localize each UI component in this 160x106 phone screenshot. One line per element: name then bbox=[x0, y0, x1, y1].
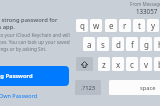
button[interactable]: q bbox=[76, 19, 88, 32]
staticText: w bbox=[93, 20, 100, 31]
button[interactable]: t bbox=[133, 19, 145, 32]
staticText: d bbox=[116, 39, 121, 50]
button[interactable]: f bbox=[126, 37, 138, 51]
staticText: r bbox=[123, 20, 127, 31]
staticText: z bbox=[102, 59, 106, 70]
button[interactable]: e bbox=[105, 19, 117, 32]
staticText: t bbox=[138, 20, 141, 31]
button[interactable]: r bbox=[119, 19, 131, 32]
staticText: g bbox=[144, 39, 149, 50]
staticText: c bbox=[130, 59, 134, 70]
staticText: Choose My Own Password bbox=[0, 92, 38, 99]
staticText: q bbox=[80, 20, 85, 31]
staticText: s bbox=[101, 39, 105, 50]
button[interactable]: a bbox=[83, 37, 95, 51]
button[interactable]: Shift bbox=[76, 57, 93, 71]
button[interactable]: d bbox=[112, 37, 124, 51]
button[interactable]: s bbox=[97, 37, 109, 51]
staticText: This password will be saved to your iClo… bbox=[0, 32, 70, 38]
button[interactable]: w bbox=[90, 19, 102, 32]
staticText: Safari can create a strong password for bbox=[0, 16, 58, 24]
button[interactable]: x bbox=[112, 57, 124, 71]
staticText: v bbox=[144, 59, 149, 70]
staticText: sync to all of your other devices. You c… bbox=[0, 39, 70, 45]
button[interactable]: Choose My Own Password bbox=[0, 91, 69, 100]
staticText: this app. bbox=[0, 23, 15, 31]
staticText: e bbox=[109, 20, 114, 31]
staticText: y bbox=[151, 20, 156, 31]
staticText: From Messages bbox=[130, 1, 160, 7]
staticText: passwords in Settings or by asking Siri. bbox=[0, 46, 47, 52]
staticText: h bbox=[158, 39, 160, 50]
button[interactable]: c bbox=[126, 57, 138, 71]
button[interactable]: y bbox=[147, 19, 159, 32]
staticText: 133057 bbox=[136, 7, 158, 15]
staticText: space bbox=[140, 84, 156, 92]
button[interactable]: h bbox=[154, 37, 160, 51]
button[interactable]: b bbox=[154, 57, 160, 71]
button[interactable] bbox=[100, 0, 160, 16]
staticText: .?123 bbox=[81, 84, 96, 92]
button[interactable]: space bbox=[109, 80, 160, 95]
staticText: b bbox=[158, 59, 160, 70]
staticText: x bbox=[116, 59, 121, 70]
staticText: a bbox=[87, 39, 92, 50]
button[interactable]: Use Strong Password bbox=[0, 66, 69, 86]
button[interactable]: z bbox=[98, 57, 110, 71]
button[interactable]: .?123 bbox=[75, 80, 101, 95]
staticText: Use Strong Password bbox=[0, 72, 33, 80]
staticText: f bbox=[131, 39, 134, 50]
button[interactable]: v bbox=[140, 57, 152, 71]
button[interactable]: g bbox=[140, 37, 152, 51]
